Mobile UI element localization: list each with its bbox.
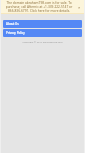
staticText: Privacy Policy: [6, 31, 25, 35]
staticText: The domain abraham798.com is for sale. T…: [4, 1, 74, 13]
button[interactable]: Privacy Policy: [3, 29, 82, 37]
button[interactable]: About Us: [3, 20, 82, 28]
staticText: Copyright © 2017 abraham798.com: [1, 40, 84, 43]
staticText: ×: [78, 5, 81, 10]
button[interactable]: Close notice: [77, 5, 82, 10]
staticText: About Us: [6, 22, 19, 26]
